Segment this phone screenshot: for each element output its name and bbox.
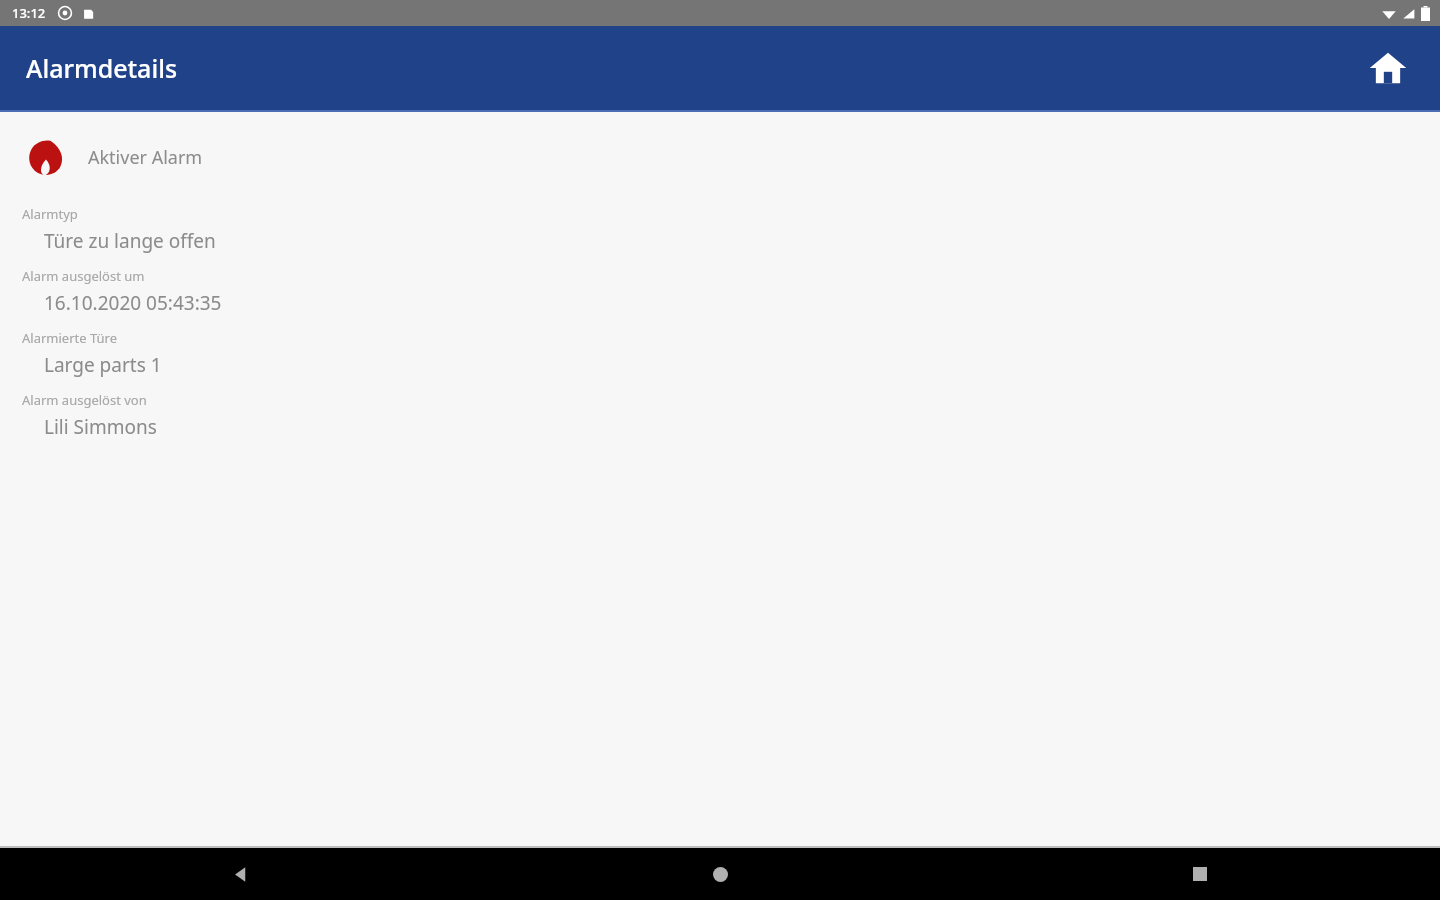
button[interactable]: Alarmierte Türe bbox=[0, 329, 1440, 391]
button[interactable]: Alarm ausgelöst von bbox=[0, 391, 1440, 453]
button[interactable]: Recent apps bbox=[960, 848, 1440, 900]
button[interactable]: Back bbox=[0, 848, 480, 900]
button[interactable]: Alarmtyp bbox=[0, 205, 1440, 267]
staticText: Large parts 1 bbox=[44, 352, 162, 378]
button[interactable]: Alarm ausgelöst um bbox=[0, 267, 1440, 329]
staticText: Alarm ausgelöst um bbox=[22, 267, 145, 285]
button[interactable]: Home bbox=[480, 848, 960, 900]
button[interactable]: Home bbox=[1360, 40, 1416, 96]
staticText: Alarmierte Türe bbox=[22, 329, 117, 347]
staticText: Türe zu lange offen bbox=[44, 228, 216, 254]
staticText: Alarmdetails bbox=[26, 51, 178, 85]
staticText: Aktiver Alarm bbox=[88, 145, 203, 170]
staticText: Lili Simmons bbox=[44, 414, 157, 440]
staticText: 13:12 bbox=[12, 4, 46, 22]
staticText: Alarmtyp bbox=[22, 205, 78, 223]
staticText: 16.10.2020 05:43:35 bbox=[44, 290, 222, 316]
staticText: Alarm ausgelöst von bbox=[22, 391, 147, 409]
